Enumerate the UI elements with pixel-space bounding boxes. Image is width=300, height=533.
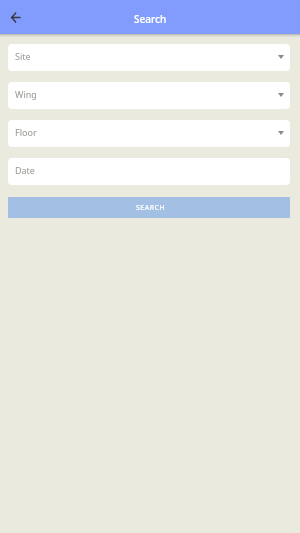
- button[interactable]: Wing: [8, 82, 290, 109]
- staticText: Wing: [15, 88, 37, 100]
- staticText: Date: [15, 164, 35, 176]
- button[interactable]: Floor: [8, 120, 290, 147]
- button[interactable]: Date: [8, 158, 290, 185]
- button[interactable]: Site: [8, 44, 290, 71]
- staticText: SEARCH: [136, 203, 166, 213]
- staticText: Floor: [15, 126, 37, 138]
- staticText: Search: [134, 12, 167, 26]
- staticText: Site: [15, 50, 31, 62]
- button[interactable]: Back: [0, 2, 30, 32]
- button[interactable]: SEARCH: [8, 197, 290, 218]
